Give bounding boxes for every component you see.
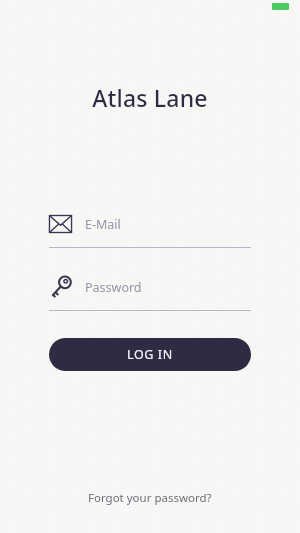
button[interactable]: E-Mail <box>49 210 251 248</box>
button[interactable]: Password <box>49 273 251 311</box>
other: Password <box>49 275 73 299</box>
staticText: E-Mail <box>85 216 121 233</box>
staticText: Password <box>85 279 142 296</box>
button[interactable]: LOG IN <box>49 338 251 371</box>
other: E-Mail <box>49 215 72 233</box>
staticText: Forgot your password? <box>88 490 212 506</box>
staticText: LOG IN <box>127 346 173 363</box>
staticText: Atlas Lane <box>92 82 208 113</box>
button[interactable]: Forgot your password? <box>78 486 222 510</box>
